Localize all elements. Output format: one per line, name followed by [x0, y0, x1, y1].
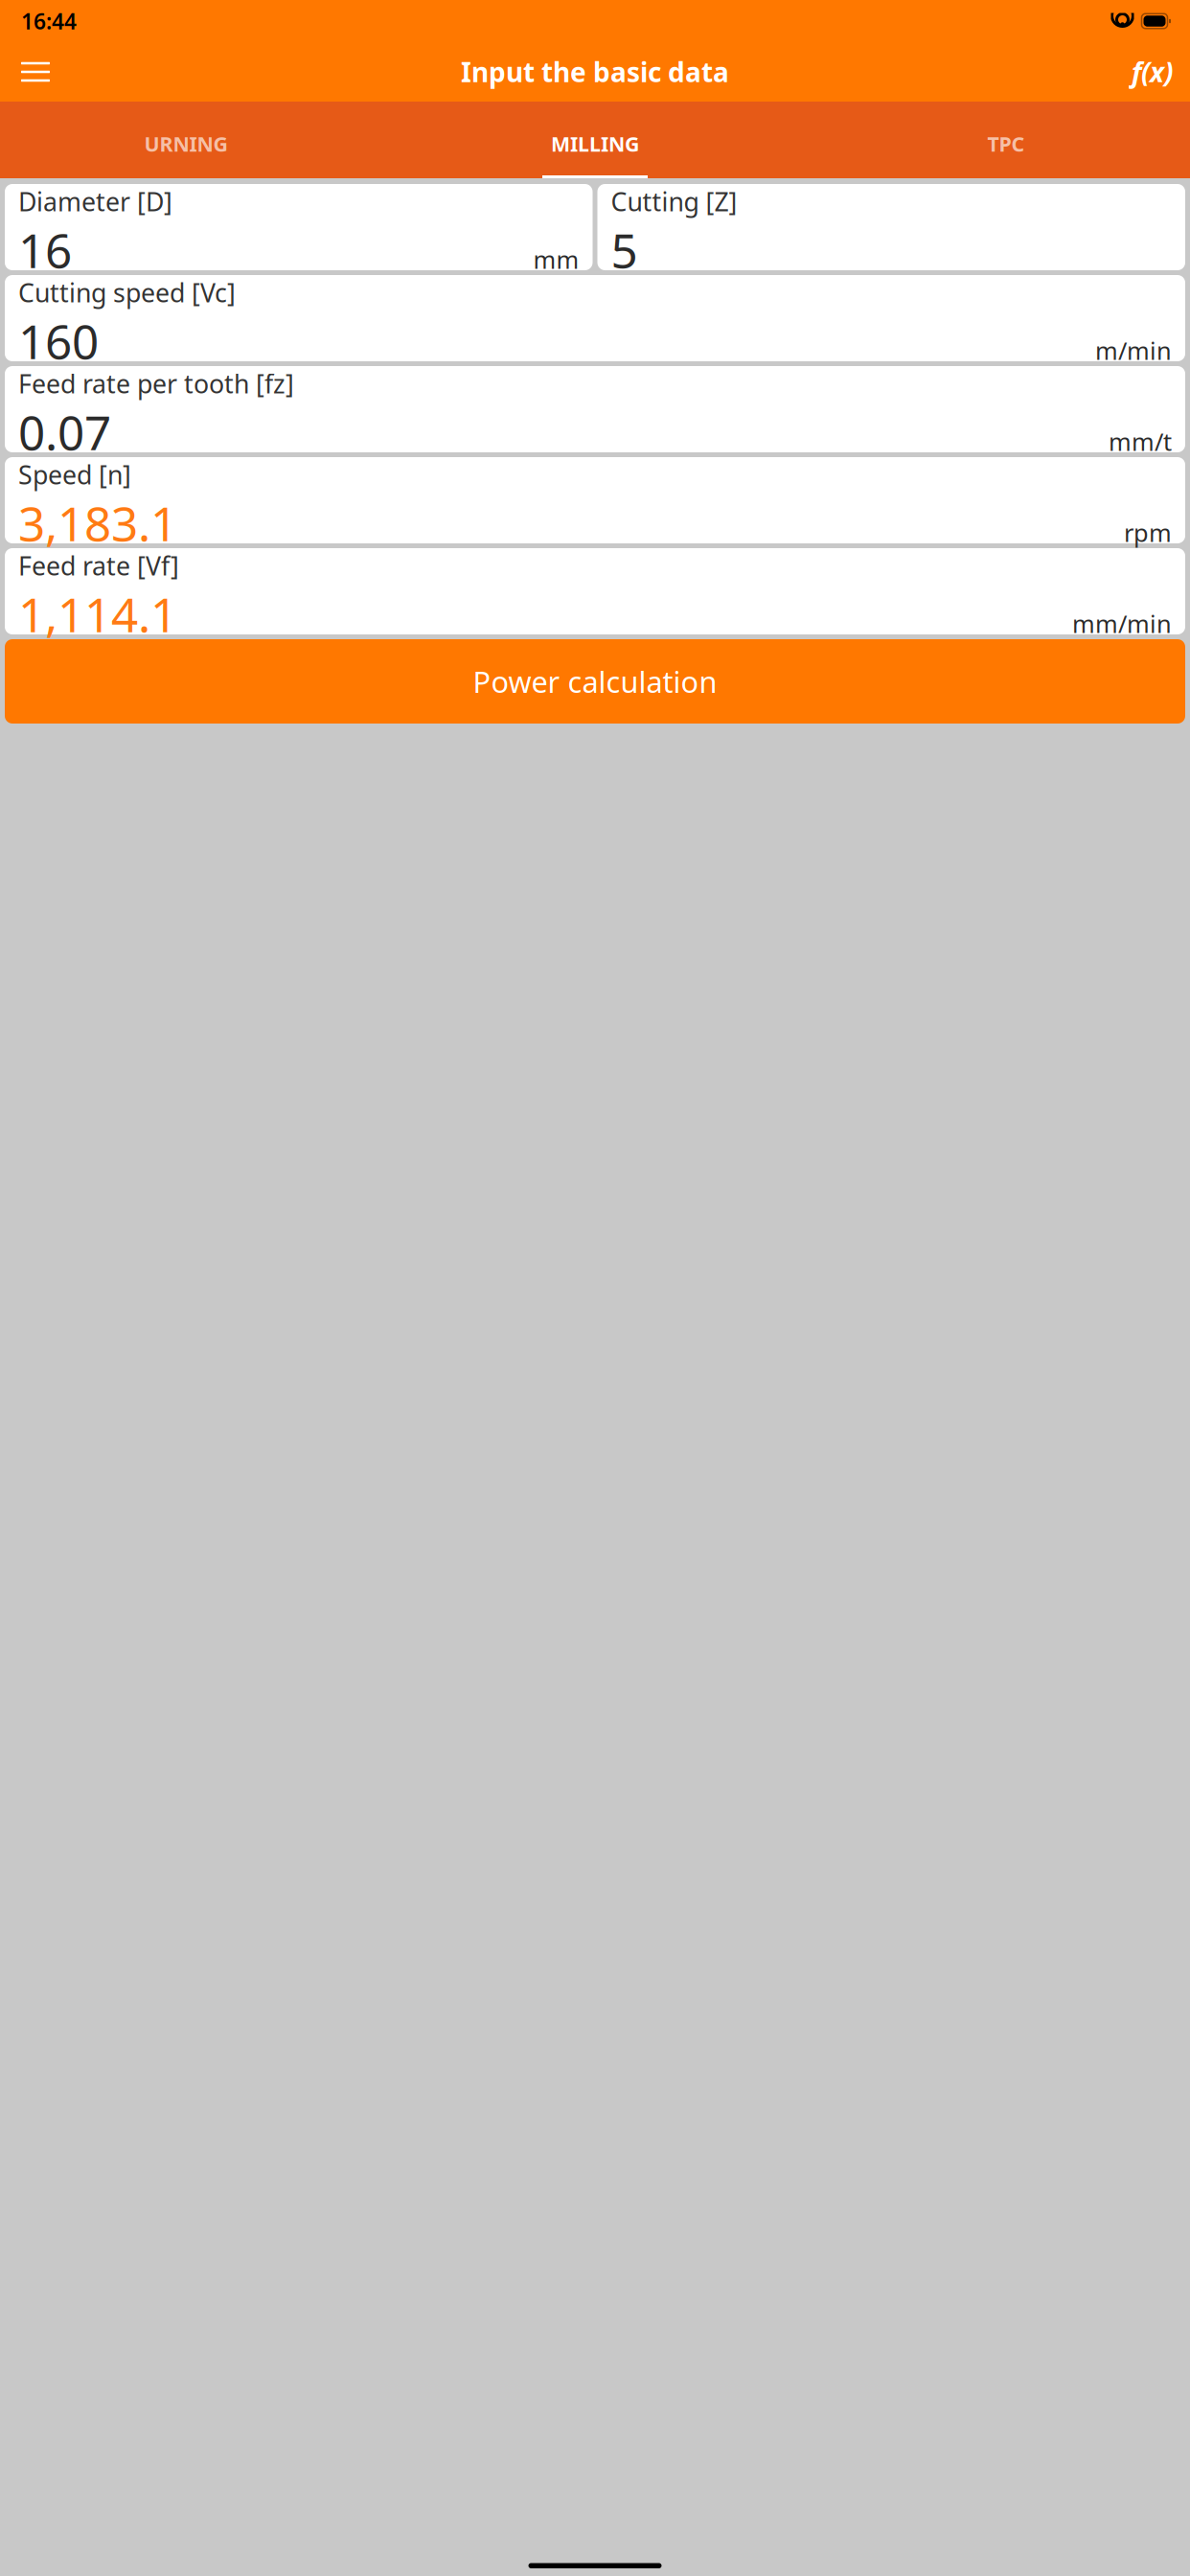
staticText: 5: [611, 218, 638, 281]
staticText: MILLING: [551, 130, 639, 157]
staticText: m/min: [1095, 334, 1172, 366]
staticText: mm/t: [1109, 425, 1172, 458]
staticText: 3,183.1: [18, 492, 177, 554]
button[interactable]: Feed rate [Vf]: [5, 548, 1185, 634]
staticText: URNING: [144, 130, 228, 157]
button[interactable]: Power calculation: [5, 639, 1185, 724]
staticText: Cutting speed [Vc]: [18, 276, 236, 309]
staticText: Speed [n]: [18, 458, 131, 492]
staticText: Diameter [D]: [18, 184, 172, 218]
staticText: 160: [18, 310, 99, 372]
button[interactable]: Cutting [Z]: [597, 184, 1185, 270]
staticText: rpm: [1124, 516, 1172, 549]
button[interactable]: Speed [n]: [5, 457, 1185, 543]
button[interactable]: MILLING: [397, 112, 793, 175]
button[interactable]: Cutting speed [Vc]: [5, 275, 1185, 361]
staticText: 0.07: [18, 401, 111, 463]
staticText: Input the basic data: [461, 54, 729, 90]
button[interactable]: Feed rate per tooth [fz]: [5, 366, 1185, 452]
staticText: Power calculation: [473, 662, 717, 701]
staticText: TPC: [987, 130, 1025, 157]
button[interactable]: TPC: [793, 112, 1190, 175]
staticText: Cutting [Z]: [611, 184, 737, 218]
staticText: f(x): [1132, 54, 1174, 90]
button[interactable]: URNING: [0, 112, 397, 175]
button[interactable]: Formula: [1123, 49, 1182, 95]
staticText: 16:44: [21, 7, 77, 35]
button[interactable]: Menu: [8, 49, 63, 95]
staticText: Feed rate per tooth [fz]: [18, 367, 294, 400]
staticText: mm/min: [1072, 607, 1172, 640]
staticText: Feed rate [Vf]: [18, 549, 179, 583]
staticText: 1,114.1: [18, 583, 177, 645]
button[interactable]: Diameter [D]: [5, 184, 593, 270]
staticText: 16: [18, 218, 72, 281]
staticText: mm: [533, 243, 579, 275]
